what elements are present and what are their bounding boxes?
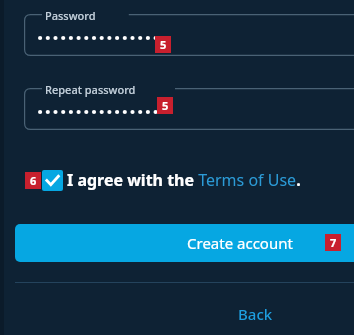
staticText: Repeat password xyxy=(45,82,136,97)
button[interactable]: Password xyxy=(24,14,354,56)
button[interactable]: Back xyxy=(232,300,279,328)
button[interactable]: Create account xyxy=(15,224,354,262)
staticText: Back xyxy=(238,304,273,324)
staticText: Create account xyxy=(187,233,293,253)
other: I agree with the Terms of Use xyxy=(42,170,63,191)
staticText: 5 xyxy=(162,98,169,113)
staticText: I agree with the Terms of Use. xyxy=(67,169,301,191)
staticText: 7 xyxy=(330,235,337,250)
staticText: 5 xyxy=(160,37,167,52)
staticText: 6 xyxy=(30,173,37,188)
button[interactable]: Repeat password xyxy=(24,88,354,130)
staticText: Password xyxy=(45,8,96,23)
button[interactable]: I agree with the Terms of Use xyxy=(0,164,354,196)
